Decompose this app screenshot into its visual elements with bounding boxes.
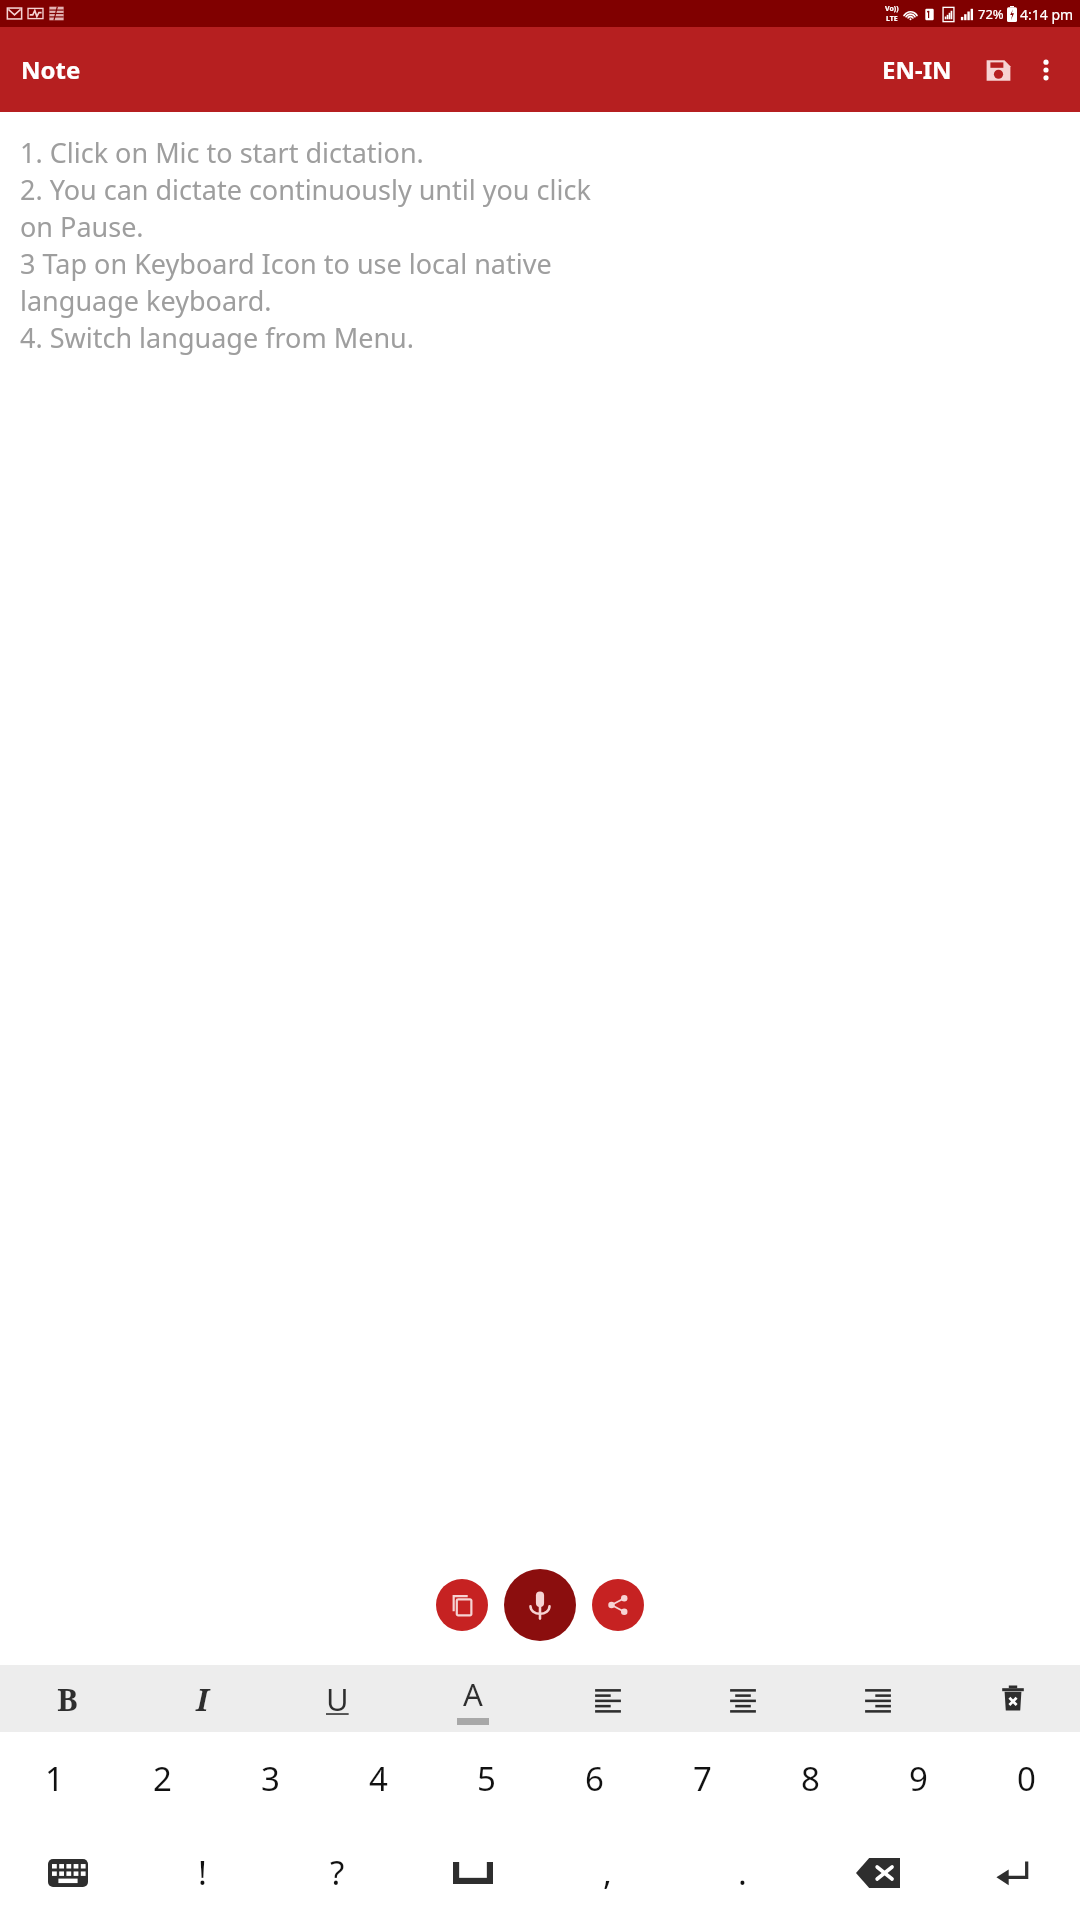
staticText: 0 (1017, 1756, 1036, 1801)
button[interactable]: 1 (0, 1732, 108, 1825)
staticText: B (57, 1678, 78, 1720)
button[interactable]: Exclamation (135, 1825, 270, 1920)
button[interactable]: Share (592, 1579, 644, 1631)
staticText: 1. Click on Mic to start dictation. (20, 134, 424, 171)
button[interactable]: 2 (108, 1732, 216, 1825)
button[interactable]: Save (974, 46, 1022, 94)
button[interactable]: More options (1022, 46, 1070, 94)
button[interactable]: Space (405, 1825, 540, 1920)
staticText: 9 (909, 1756, 928, 1801)
button[interactable]: Keyboard (0, 1825, 135, 1920)
button[interactable]: Text color (405, 1665, 540, 1732)
staticText: language keyboard. (20, 282, 272, 319)
staticText: ? (330, 1850, 345, 1895)
staticText: EN-IN (882, 53, 952, 86)
button[interactable]: 3 (216, 1732, 324, 1825)
button[interactable]: 0 (972, 1732, 1080, 1825)
staticText: U (326, 1678, 349, 1720)
staticText: I (196, 1678, 209, 1720)
button[interactable]: Enter (945, 1825, 1080, 1920)
staticText: 4:14 pm (1020, 5, 1074, 24)
button[interactable]: EN-IN (872, 45, 962, 94)
button[interactable]: 7 (648, 1732, 756, 1825)
button[interactable]: Align right (810, 1665, 945, 1732)
staticText: 2 (153, 1756, 172, 1801)
button[interactable]: Period (675, 1825, 810, 1920)
button[interactable]: Copy (436, 1579, 488, 1631)
staticText: 4. Switch language from Menu. (20, 319, 415, 356)
staticText: 5 (477, 1756, 496, 1801)
button[interactable]: 4 (324, 1732, 432, 1825)
staticText: 4 (369, 1756, 388, 1801)
button[interactable]: Comma (540, 1825, 675, 1920)
button[interactable]: Microphone (504, 1569, 576, 1641)
staticText: 8 (801, 1756, 820, 1801)
button[interactable]: Delete (945, 1665, 1080, 1732)
button[interactable]: 9 (864, 1732, 972, 1825)
button[interactable]: Question mark (270, 1825, 405, 1920)
staticText: 7 (693, 1756, 712, 1801)
staticText: ! (198, 1850, 207, 1895)
button[interactable]: 5 (432, 1732, 540, 1825)
staticText: on Pause. (20, 208, 144, 245)
staticText: , (603, 1850, 612, 1895)
button[interactable]: Align left (540, 1665, 675, 1732)
button[interactable]: Underline (270, 1665, 405, 1732)
staticText: . (738, 1850, 747, 1895)
button[interactable]: Italic (135, 1665, 270, 1732)
staticText: 1 (45, 1756, 64, 1801)
staticText: 2. You can dictate continuously until yo… (20, 171, 591, 208)
staticText: Note (21, 53, 81, 86)
staticText: 72% (978, 5, 1004, 23)
staticText: 3 (261, 1756, 280, 1801)
staticText: LTE (886, 14, 898, 24)
button[interactable]: Backspace (810, 1825, 945, 1920)
staticText: Vo)) (885, 4, 899, 14)
staticText: 3 Tap on Keyboard Icon to use local nati… (20, 245, 552, 282)
staticText: 6 (585, 1756, 604, 1801)
button[interactable]: 8 (756, 1732, 864, 1825)
button[interactable]: 6 (540, 1732, 648, 1825)
staticText: A (463, 1673, 483, 1715)
button[interactable]: Align center (675, 1665, 810, 1732)
button[interactable]: Bold (0, 1665, 135, 1732)
